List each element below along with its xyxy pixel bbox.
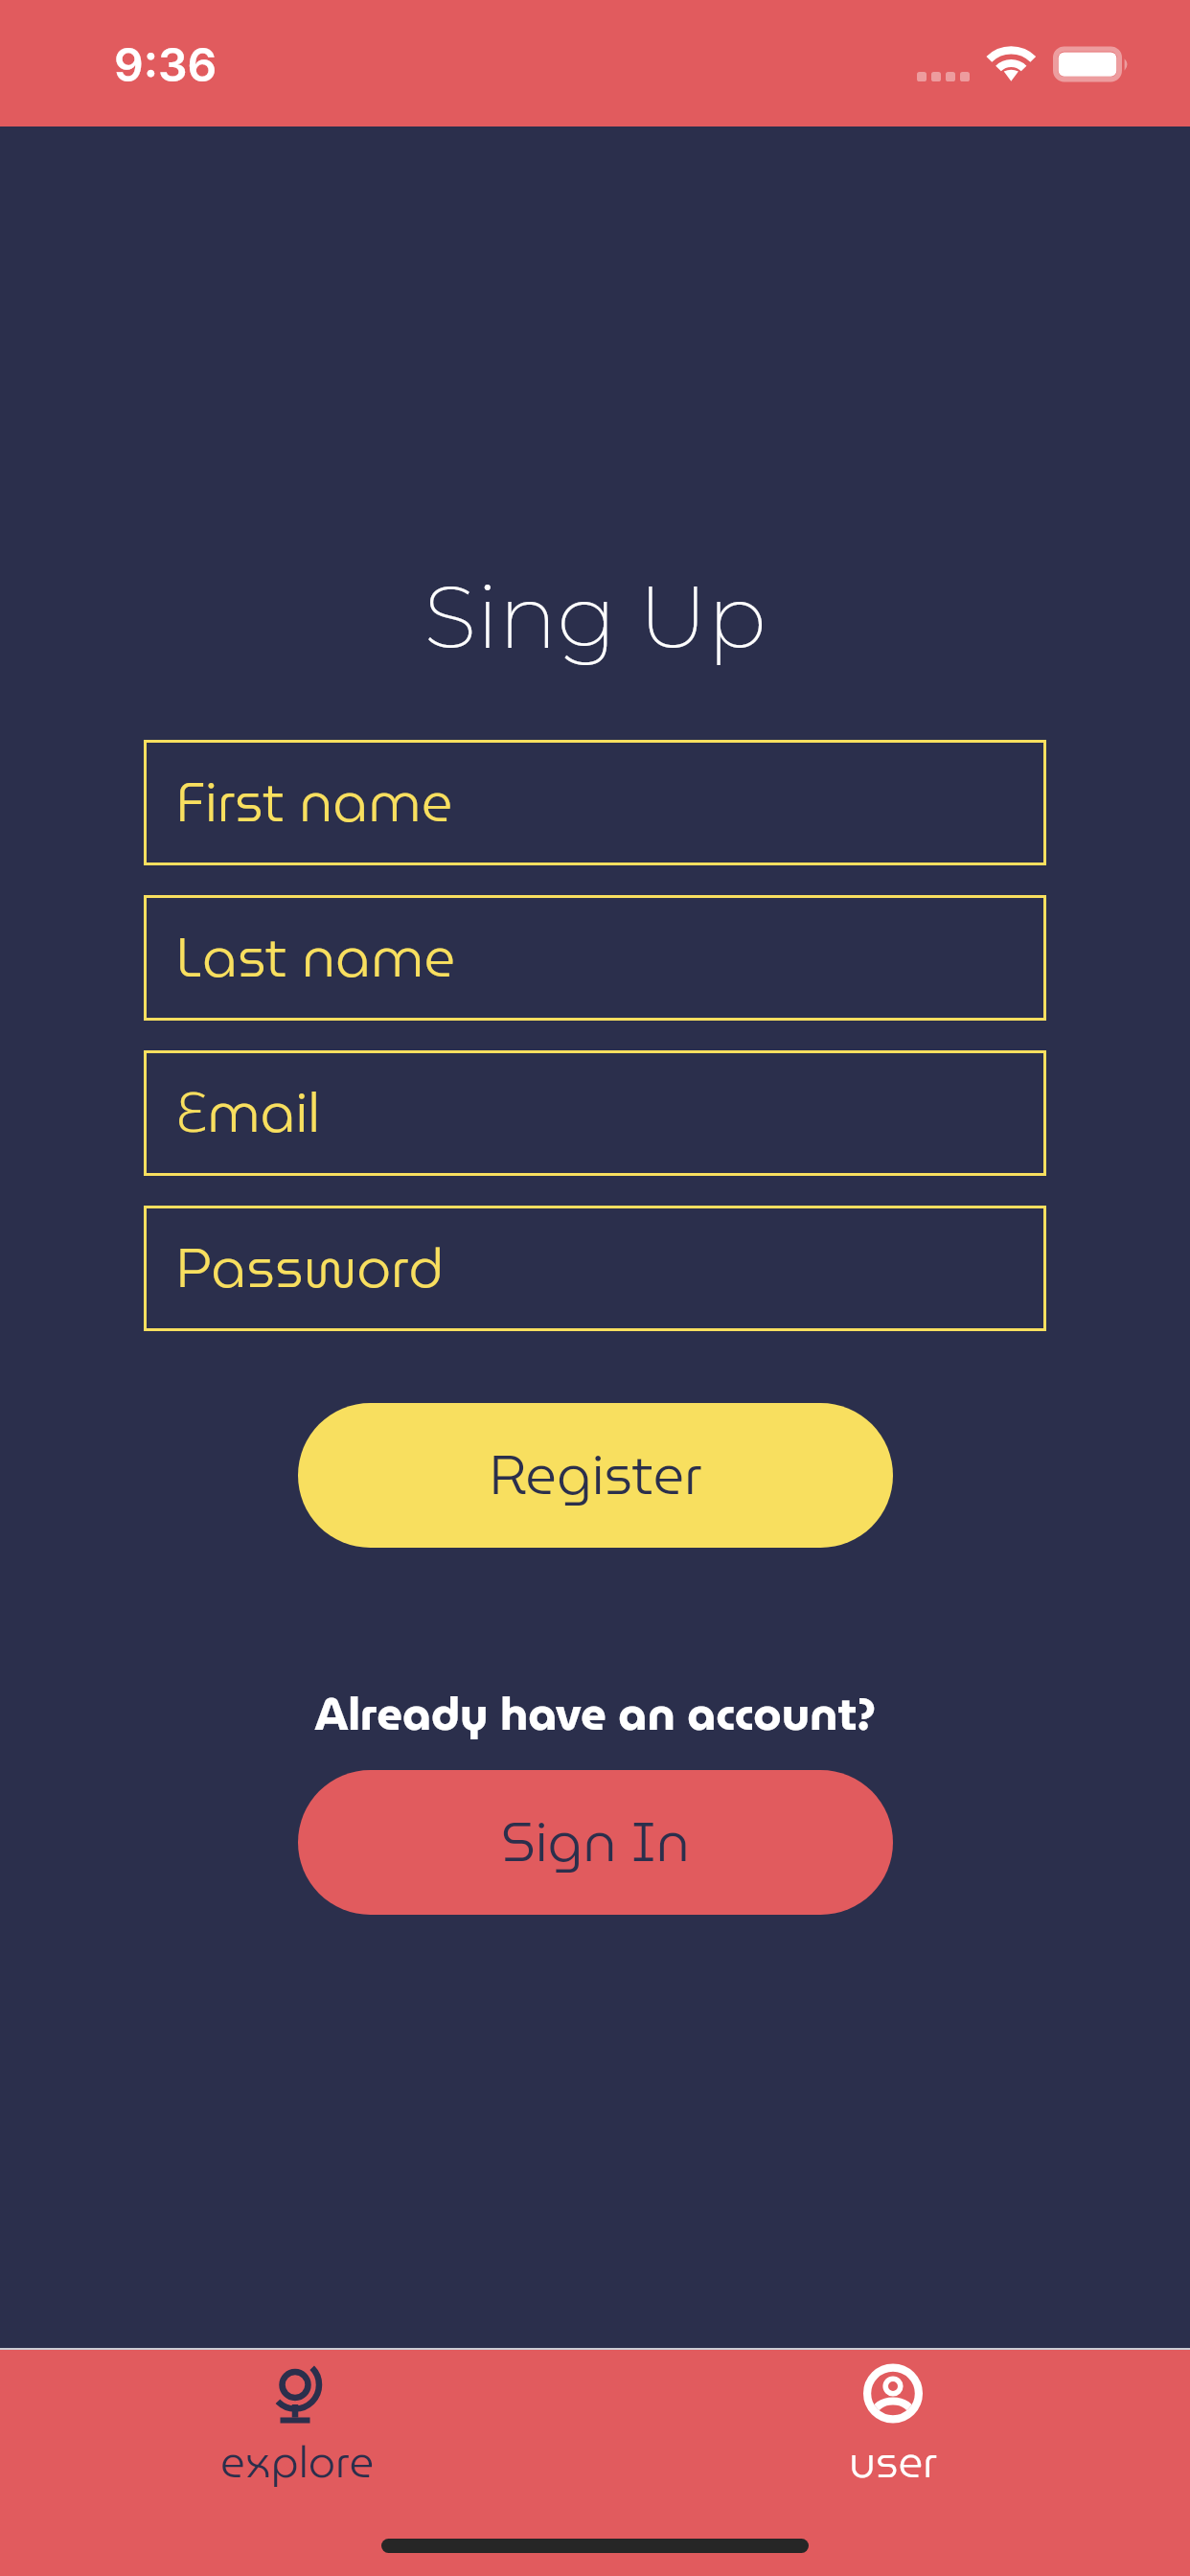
other: user: [858, 2358, 927, 2427]
staticText: Password: [176, 1225, 445, 1312]
staticText: Register: [490, 1432, 702, 1519]
button[interactable]: user: [595, 2350, 1190, 2576]
other: explore: [263, 2358, 332, 2427]
button[interactable]: Password: [144, 1206, 1046, 1331]
staticText: 9:36: [114, 36, 217, 92]
button[interactable]: Sign In: [298, 1770, 893, 1915]
staticText: explore: [220, 2427, 375, 2496]
button[interactable]: First name: [144, 740, 1046, 865]
staticText: First name: [176, 759, 453, 846]
button[interactable]: Ɛmail: [144, 1050, 1046, 1176]
staticText: user: [849, 2427, 937, 2496]
staticText: Sign In: [501, 1799, 690, 1886]
button[interactable]: explore: [0, 2350, 595, 2576]
button[interactable]: Register: [298, 1403, 893, 1548]
staticText: Ɛmail: [176, 1069, 321, 1157]
button[interactable]: Last name: [144, 895, 1046, 1021]
staticText: Sing Up: [0, 563, 1190, 670]
staticText: Already have an account?: [0, 1678, 1190, 1750]
staticText: Last name: [176, 914, 456, 1001]
